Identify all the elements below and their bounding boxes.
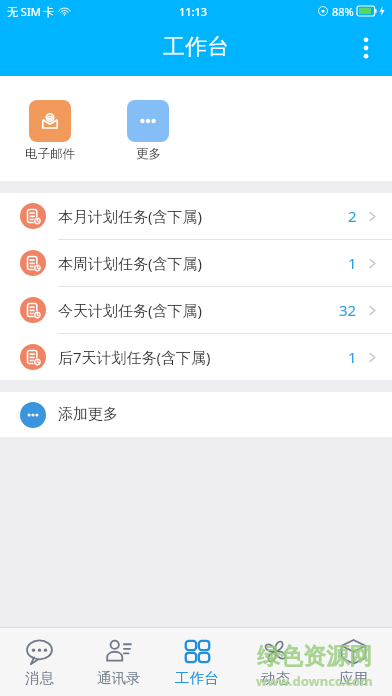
staticText: 后7天计划任务(含下属) (58, 347, 211, 367)
staticText: 88% (332, 4, 354, 19)
staticText: 更多 (136, 146, 161, 162)
button[interactable]: 工作台 (158, 628, 236, 696)
button[interactable]: 后7天计划任务(含下属) (0, 334, 392, 380)
button[interactable]: 应用 (314, 628, 392, 696)
staticText: 电子邮件 (25, 146, 75, 162)
button[interactable]: 添加更多 (0, 392, 392, 437)
staticText: 动态 (261, 669, 290, 687)
staticText: 32 (339, 300, 357, 320)
staticText: 2 (348, 206, 357, 226)
staticText: 工作台 (175, 669, 219, 687)
staticText: 应用 (339, 669, 368, 687)
staticText: 11:13 (179, 4, 208, 19)
staticText: 工作台 (163, 33, 229, 61)
staticText: 消息 (25, 669, 54, 687)
button[interactable]: 消息 (0, 628, 79, 696)
staticText: 绿色资源网 (257, 642, 372, 671)
staticText: 通讯录 (97, 669, 141, 687)
staticText: 本月计划任务(含下属) (58, 206, 203, 226)
staticText: 本周计划任务(含下属) (58, 253, 203, 273)
button[interactable]: 今天计划任务(含下属) (0, 287, 392, 333)
button[interactable]: 通讯录 (79, 628, 158, 696)
staticText: 无 SIM 卡 (7, 4, 55, 19)
button[interactable]: 电子邮件 (1, 100, 99, 162)
staticText: 添加更多 (58, 405, 118, 424)
button[interactable]: 动态 (236, 628, 314, 696)
staticText: 今天计划任务(含下属) (58, 300, 203, 320)
staticText: www.downcc.com (256, 672, 373, 690)
button[interactable]: 本月计划任务(含下属) (0, 193, 392, 239)
staticText: 1 (348, 347, 357, 367)
button[interactable]: 更多 (99, 100, 197, 162)
button[interactable]: 本周计划任务(含下属) (0, 240, 392, 286)
staticText: 1 (348, 253, 357, 273)
button[interactable]: More options (344, 26, 388, 70)
